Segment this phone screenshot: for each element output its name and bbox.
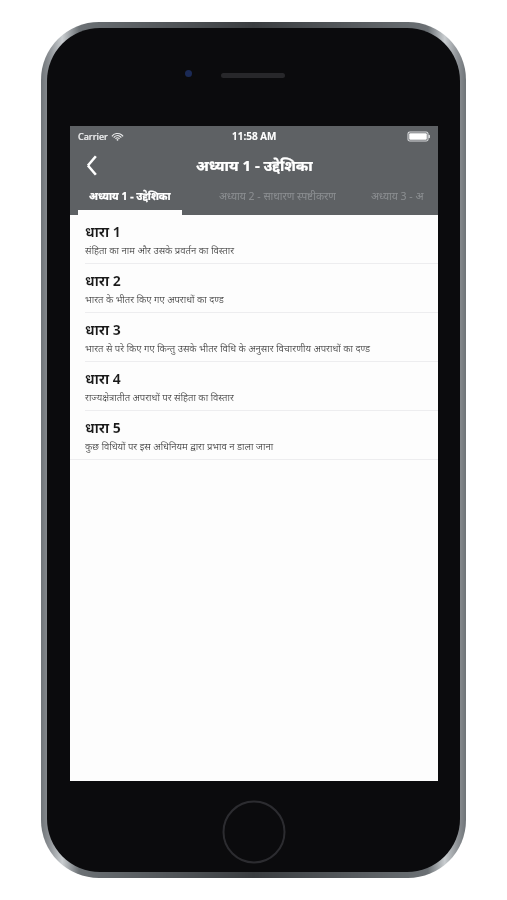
- button[interactable]: अध्याय 3 - अ: [365, 184, 438, 215]
- staticText: 11:58 AM: [232, 129, 277, 143]
- button[interactable]: अध्याय 2 - साधारण स्पष्टीकरण: [190, 184, 365, 215]
- staticText: धारा 5: [85, 418, 121, 437]
- button[interactable]: Back: [70, 146, 114, 184]
- staticText: अध्याय 1 - उद्देशिका: [196, 155, 313, 175]
- staticText: Carrier: [78, 130, 108, 142]
- staticText: धारा 1: [85, 222, 121, 241]
- button[interactable]: धारा 3: [70, 313, 438, 361]
- staticText: कुछ विधियों पर इस अधिनियम द्वारा प्रभाव …: [85, 440, 274, 453]
- staticText: राज्यक्षेत्रातीत अपराधों पर संहिता का वि…: [85, 391, 234, 404]
- button[interactable]: धारा 5: [70, 411, 438, 459]
- staticText: भारत से परे किए गए किन्तु उसके भीतर विधि…: [85, 342, 371, 355]
- staticText: अध्याय 3 - अ: [371, 189, 424, 203]
- button[interactable]: धारा 2: [70, 264, 438, 312]
- staticText: धारा 3: [85, 320, 121, 339]
- staticText: अध्याय 2 - साधारण स्पष्टीकरण: [219, 189, 336, 203]
- staticText: धारा 4: [85, 369, 121, 388]
- staticText: धारा 2: [85, 271, 121, 290]
- staticText: संहिता का नाम और उसके प्रवर्तन का विस्ता…: [85, 244, 235, 257]
- button[interactable]: धारा 4: [70, 362, 438, 410]
- staticText: अध्याय 1 - उद्देशिका: [89, 189, 171, 203]
- button[interactable]: अध्याय 1 - उद्देशिका: [70, 184, 190, 215]
- staticText: भारत के भीतर किए गए अपराधों का दण्ड: [85, 293, 224, 306]
- button[interactable]: धारा 1: [70, 215, 438, 263]
